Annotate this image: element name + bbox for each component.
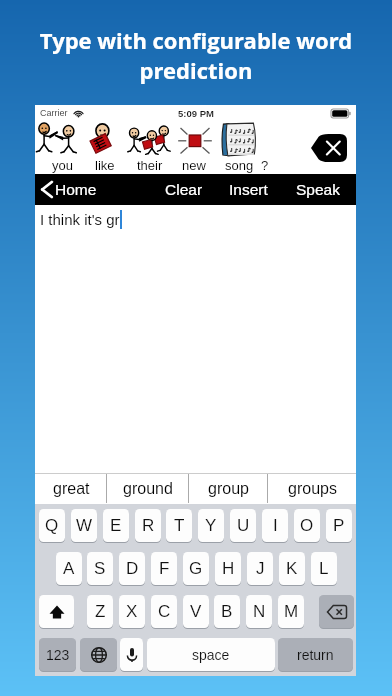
button[interactable]: ? (259, 156, 271, 174)
staticText: great (53, 480, 90, 498)
staticText: Clear (165, 181, 203, 198)
staticText: Q (45, 516, 59, 535)
button[interactable]: S (87, 552, 113, 585)
staticText: like (95, 158, 115, 173)
button[interactable]: B (214, 595, 240, 628)
staticText: ground (123, 480, 173, 498)
button[interactable]: N (246, 595, 272, 628)
button[interactable]: Clear (157, 174, 210, 205)
staticText: F (159, 559, 170, 578)
button[interactable]: Home (39, 180, 97, 199)
staticText: D (126, 559, 139, 578)
button[interactable]: W (71, 509, 97, 542)
staticText: I think it's gr (40, 211, 120, 228)
button[interactable]: R (135, 509, 161, 542)
staticText: you (52, 158, 73, 173)
button[interactable]: Change keyboard (80, 638, 117, 671)
staticText: N (253, 602, 266, 621)
button[interactable]: their (124, 156, 176, 174)
staticText: L (319, 559, 329, 578)
button[interactable]: you (37, 156, 87, 174)
staticText: groups (288, 480, 337, 498)
staticText: K (286, 559, 298, 578)
button[interactable]: J (247, 552, 273, 585)
button[interactable]: Insert (224, 174, 272, 205)
staticText: P (333, 516, 345, 535)
button[interactable]: group (189, 473, 268, 504)
button[interactable]: Y (198, 509, 224, 542)
button[interactable]: 123 (39, 638, 76, 671)
staticText: M (284, 602, 299, 621)
staticText: V (190, 602, 202, 621)
staticText: Y (205, 516, 217, 535)
staticText: 123 (46, 647, 70, 663)
button[interactable]: Q (39, 509, 65, 542)
button[interactable]: groups (268, 473, 356, 504)
staticText: Insert (229, 181, 268, 198)
staticText: Home (55, 181, 97, 198)
button[interactable]: great (35, 473, 107, 504)
button[interactable]: Speak (292, 174, 344, 205)
staticText: Z (95, 602, 106, 621)
button[interactable]: A (56, 552, 82, 585)
button[interactable]: D (119, 552, 145, 585)
staticText: their (137, 158, 163, 173)
button[interactable]: P (326, 509, 352, 542)
button[interactable]: song (217, 156, 262, 174)
staticText: Carrier (40, 108, 68, 118)
staticText: A (63, 559, 75, 578)
staticText: song (225, 158, 254, 173)
staticText: G (189, 559, 203, 578)
staticText: U (237, 516, 250, 535)
staticText: O (300, 516, 314, 535)
button[interactable]: C (151, 595, 177, 628)
staticText: space (192, 647, 230, 663)
button[interactable]: new (174, 156, 214, 174)
button[interactable]: ground (107, 473, 189, 504)
staticText: group (208, 480, 249, 498)
staticText: J (256, 559, 265, 578)
button[interactable]: like (85, 156, 125, 174)
staticText: S (94, 559, 106, 578)
button[interactable]: M (278, 595, 304, 628)
staticText: I (273, 516, 278, 535)
staticText: new (182, 158, 206, 173)
button[interactable]: O (294, 509, 320, 542)
button[interactable]: K (279, 552, 305, 585)
button[interactable]: Delete (311, 134, 347, 162)
staticText: T (174, 516, 185, 535)
staticText: X (126, 602, 138, 621)
button[interactable]: L (311, 552, 337, 585)
button[interactable]: E (103, 509, 129, 542)
button[interactable]: X (119, 595, 145, 628)
staticText: ? (261, 158, 269, 173)
button[interactable]: return (278, 638, 353, 671)
staticText: E (110, 516, 122, 535)
staticText: B (221, 602, 233, 621)
button[interactable]: T (166, 509, 192, 542)
button[interactable]: I (262, 509, 288, 542)
staticText: return (297, 647, 334, 663)
button[interactable]: Dictation (120, 638, 143, 671)
button[interactable]: H (215, 552, 241, 585)
button[interactable]: F (151, 552, 177, 585)
button[interactable]: V (183, 595, 209, 628)
button[interactable]: G (183, 552, 209, 585)
staticText: Type with configurable word prediction (22, 25, 370, 86)
staticText: R (142, 516, 155, 535)
button[interactable]: U (230, 509, 256, 542)
staticText: C (158, 602, 171, 621)
staticText: W (76, 516, 93, 535)
button[interactable]: Shift (39, 595, 74, 628)
staticText: 5:09 PM (178, 108, 214, 119)
button[interactable]: Backspace (319, 595, 354, 628)
button[interactable]: Z (87, 595, 113, 628)
staticText: Speak (296, 181, 340, 198)
button[interactable]: space (147, 638, 275, 671)
staticText: H (222, 559, 235, 578)
